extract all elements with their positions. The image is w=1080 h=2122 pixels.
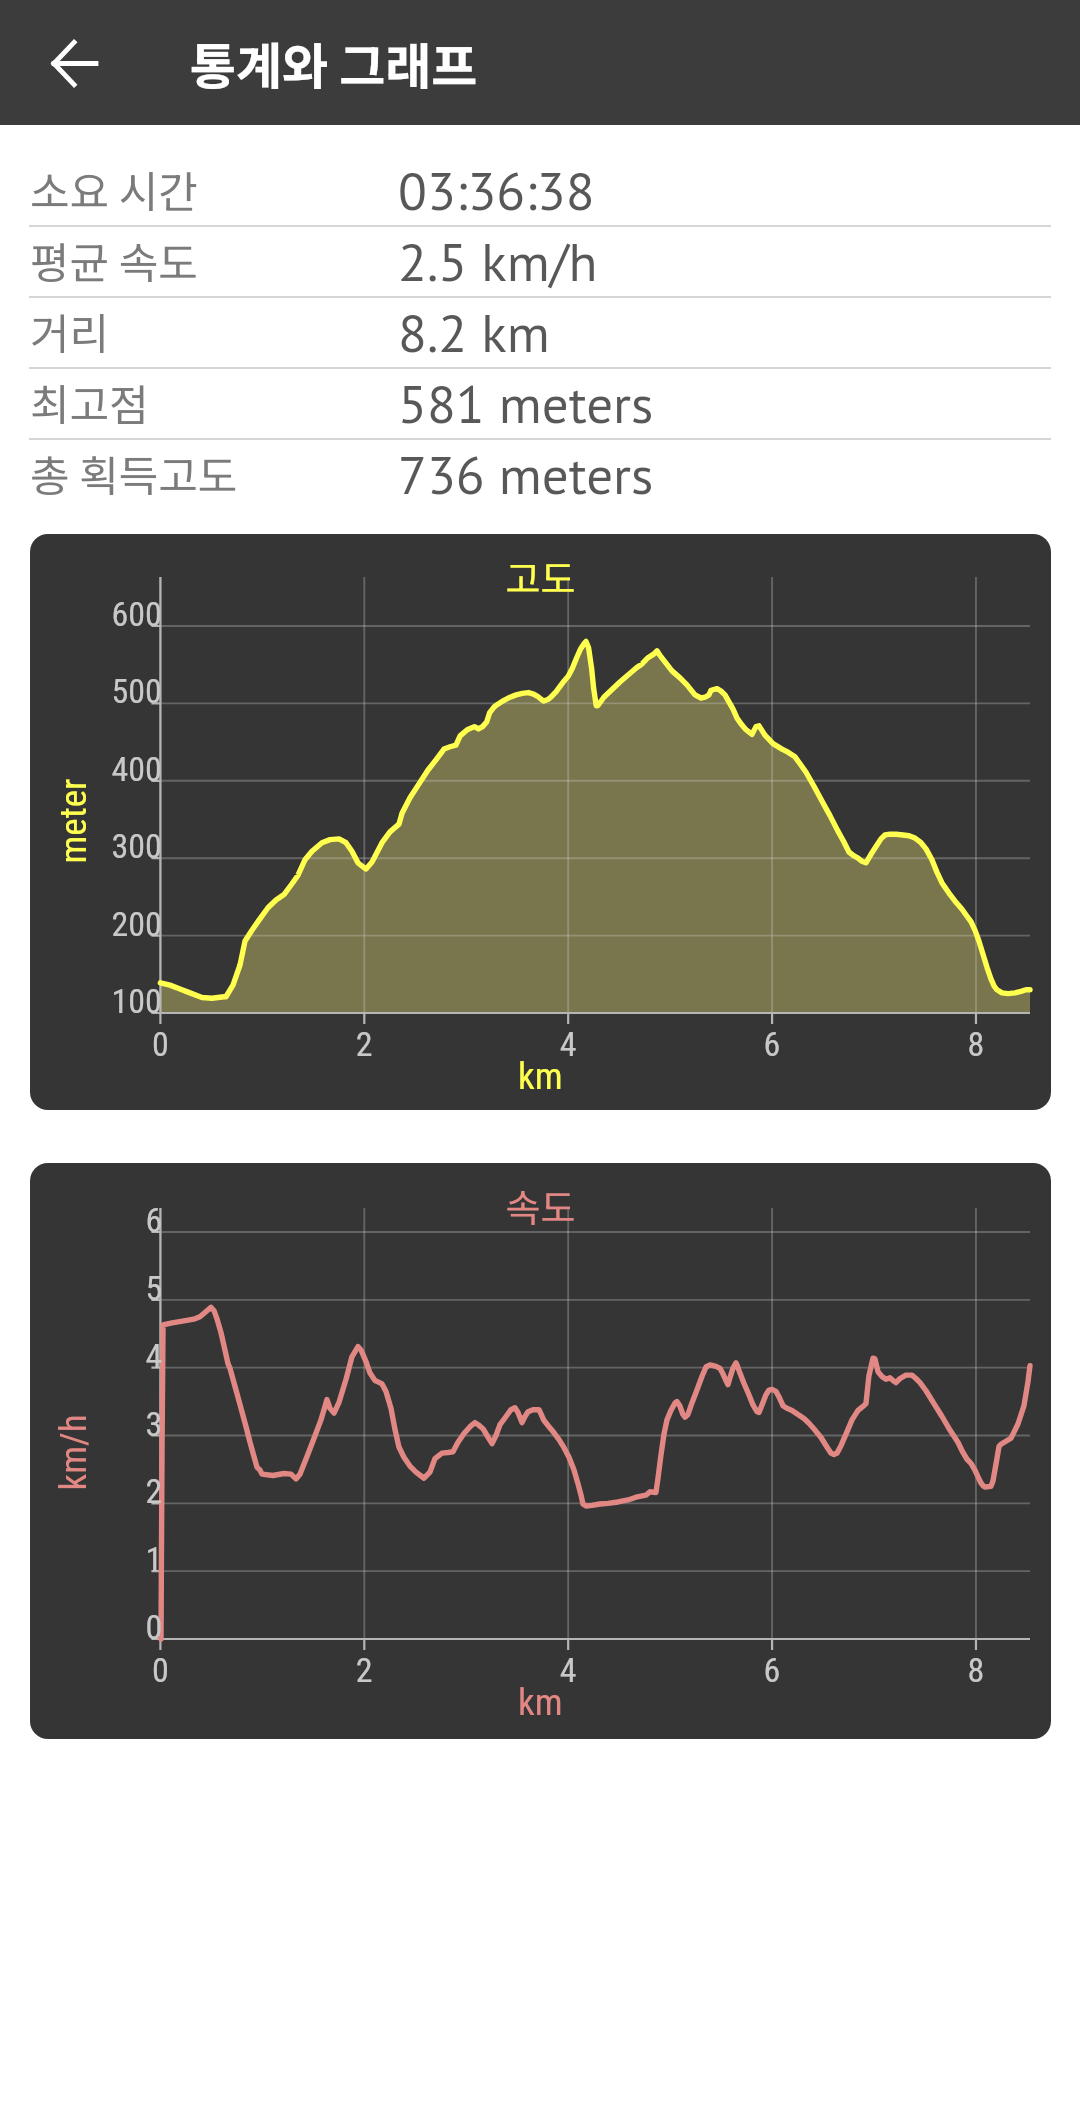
button[interactable]: 평균 속도 xyxy=(0,227,1080,296)
button[interactable]: Back xyxy=(29,18,119,108)
staticText: 최고점 xyxy=(30,371,149,433)
button[interactable]: 소요 시간 xyxy=(0,156,1080,225)
staticText: 2.5 km/h xyxy=(398,227,598,296)
staticText: 03:36:38 xyxy=(398,156,595,225)
staticText: 거리 xyxy=(30,300,110,362)
staticText: 통계와 그래프 xyxy=(190,27,478,99)
button[interactable]: 총 획득고도 xyxy=(0,440,1080,509)
staticText: 736 meters xyxy=(398,440,654,509)
staticText: 581 meters xyxy=(398,369,654,438)
staticText: 총 획득고도 xyxy=(30,442,238,504)
staticText: 8.2 km xyxy=(398,298,550,367)
button[interactable]: 최고점 xyxy=(0,369,1080,438)
staticText: 소요 시간 xyxy=(30,158,198,220)
button[interactable]: 거리 xyxy=(0,298,1080,367)
staticText: 평균 속도 xyxy=(30,229,198,291)
